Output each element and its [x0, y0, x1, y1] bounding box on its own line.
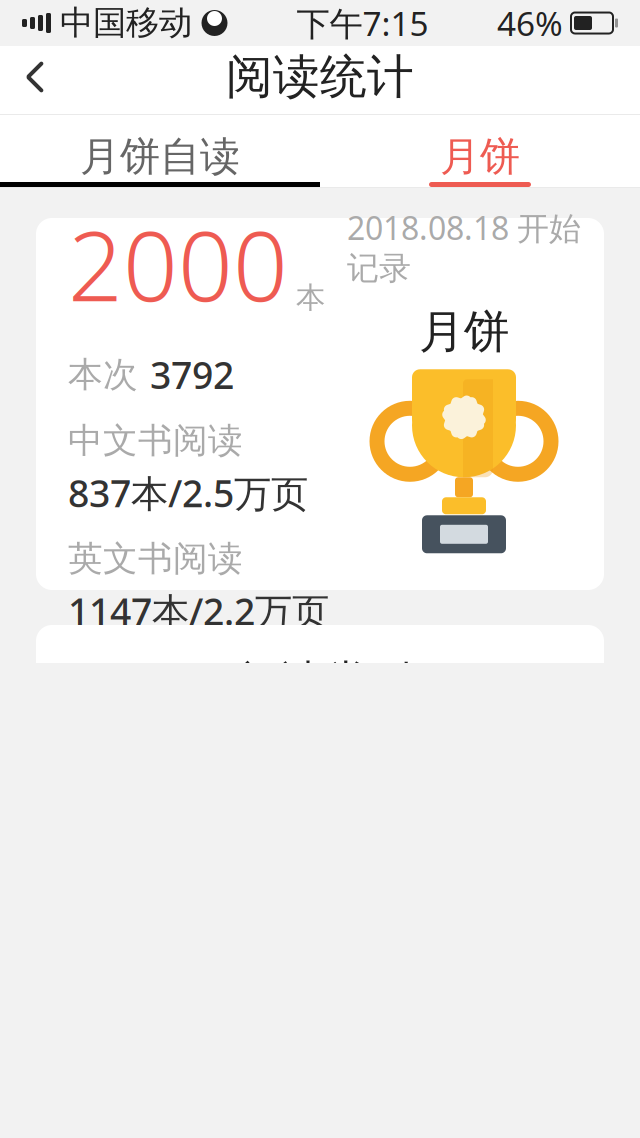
staticText: 2000: [68, 200, 288, 328]
staticText: 本次: [68, 353, 138, 396]
staticText: 中国移动: [60, 2, 192, 43]
staticText: 阅读类别: [239, 655, 411, 707]
staticText: 2018.08.18 开始记录: [347, 206, 581, 288]
staticText: 月饼: [419, 304, 509, 360]
staticText: 3792: [150, 350, 234, 399]
staticText: 1147本/2.2万页: [68, 586, 329, 636]
button[interactable]: 返回: [0, 46, 70, 108]
staticText: 本: [296, 280, 325, 316]
staticText: 中文书阅读: [68, 419, 243, 462]
button[interactable]: 月饼自读: [0, 115, 320, 187]
staticText: 837本/2.5万页: [68, 468, 308, 518]
staticText: 英文书阅读: [68, 537, 243, 580]
staticText: 下午7:15: [296, 1, 428, 45]
staticText: 月饼: [440, 132, 520, 181]
staticText: 46%: [497, 1, 563, 45]
button[interactable]: 月饼: [320, 115, 640, 187]
staticText: 阅读统计: [226, 48, 414, 106]
staticText: 月饼自读: [80, 132, 240, 181]
